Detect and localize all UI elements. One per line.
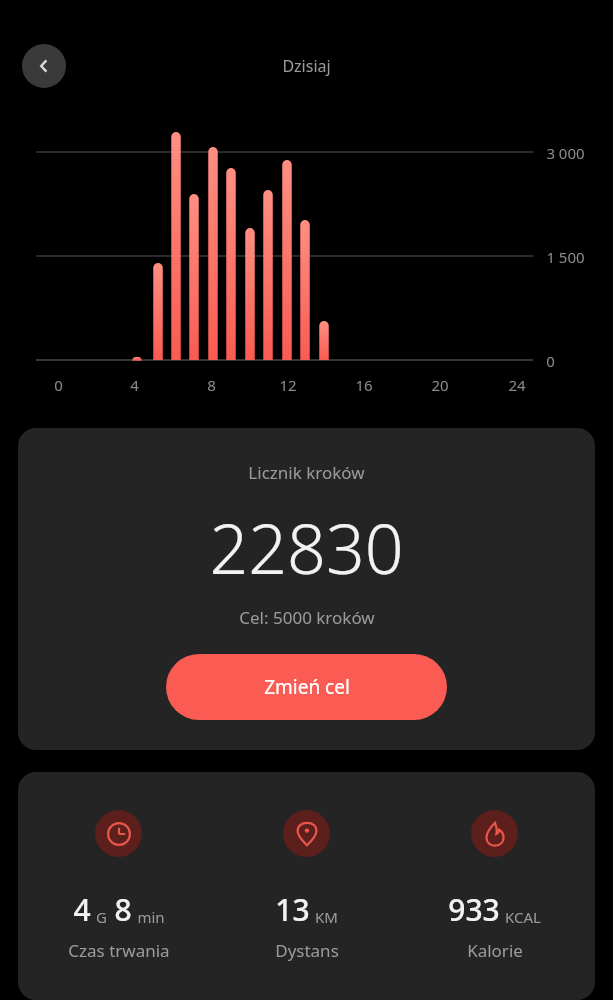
staticText: 0: [546, 351, 555, 371]
staticText: 0: [54, 375, 63, 395]
staticText: Zmień cel: [264, 674, 350, 700]
staticText: 22830: [209, 501, 404, 594]
staticText: 1 500: [546, 247, 585, 267]
staticText: KM: [315, 907, 338, 927]
staticText: 8: [114, 889, 132, 930]
staticText: Cel: 5000 kroków: [239, 606, 375, 629]
staticText: 3 000: [546, 143, 585, 163]
staticText: KCAL: [505, 907, 541, 927]
staticText: Dystans: [275, 939, 339, 962]
staticText: Licznik kroków: [248, 461, 365, 484]
staticText: 4: [130, 375, 139, 395]
staticText: 20: [431, 375, 449, 395]
staticText: 4: [73, 889, 91, 930]
staticText: 933: [448, 889, 500, 930]
staticText: 24: [508, 375, 526, 395]
staticText: Kalorie: [467, 939, 523, 962]
staticText: 16: [355, 375, 373, 395]
button[interactable]: Zmień cel: [166, 654, 447, 720]
staticText: 8: [207, 375, 216, 395]
staticText: 13: [275, 889, 310, 930]
button[interactable]: 4: [31, 772, 206, 962]
staticText: Czas trwania: [68, 939, 170, 962]
staticText: min: [137, 907, 165, 927]
staticText: G: [96, 907, 107, 927]
button[interactable]: 13: [219, 772, 394, 962]
button[interactable]: Back: [22, 44, 66, 88]
staticText: 12: [279, 375, 297, 395]
staticText: Dzisiaj: [282, 55, 331, 77]
button[interactable]: 933: [407, 772, 582, 962]
